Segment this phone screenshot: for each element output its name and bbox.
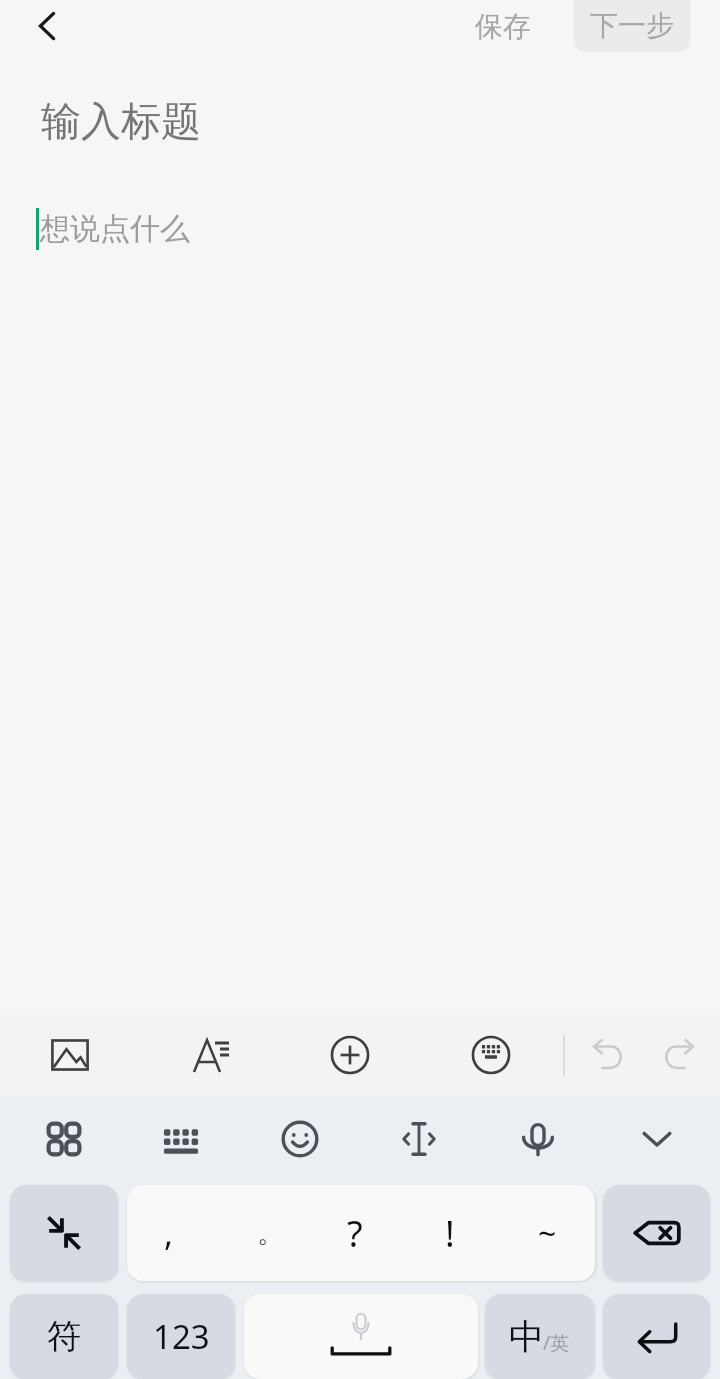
button[interactable]: Back <box>19 0 75 54</box>
staticText: , <box>164 1210 174 1256</box>
button[interactable]: 输入标题 <box>0 70 720 160</box>
button[interactable]: 符 <box>10 1294 118 1379</box>
button[interactable]: Redo <box>646 1023 710 1087</box>
button[interactable]: Keyboard <box>459 1023 523 1087</box>
button[interactable]: Keyboard layout <box>149 1107 213 1171</box>
staticText: 想说点什么 <box>40 210 190 248</box>
staticText: /英 <box>543 1330 570 1356</box>
button[interactable]: 下一步 <box>574 0 690 52</box>
button[interactable]: Collapse keyboard <box>10 1185 118 1281</box>
staticText: 。 <box>257 1217 283 1250</box>
staticText: 符 <box>47 1315 81 1358</box>
button[interactable]: Voice input <box>506 1107 570 1171</box>
staticText: 输入标题 <box>41 96 201 146</box>
staticText: ! <box>445 1209 455 1258</box>
button[interactable]: Space <box>244 1294 478 1379</box>
button[interactable]: Move cursor <box>387 1107 451 1171</box>
button[interactable]: Insert image <box>38 1023 102 1087</box>
button[interactable]: Apps <box>32 1107 96 1171</box>
button[interactable]: 123 <box>127 1294 235 1379</box>
staticText: ~ <box>538 1211 557 1255</box>
button[interactable]: Text format <box>177 1023 241 1087</box>
button[interactable]: Hide keyboard <box>625 1107 689 1171</box>
staticText: ? <box>347 1209 363 1258</box>
staticText: 123 <box>153 1314 210 1359</box>
staticText: 中 <box>509 1315 544 1359</box>
button[interactable]: Add <box>318 1023 382 1087</box>
staticText: 下一步 <box>590 8 674 43</box>
button[interactable]: 中 <box>485 1294 595 1379</box>
button[interactable]: 保存 <box>458 0 548 56</box>
button[interactable]: Undo <box>577 1023 641 1087</box>
button[interactable]: Emoji <box>268 1107 332 1171</box>
button[interactable]: Enter <box>603 1294 710 1379</box>
button[interactable]: 想说点什么 <box>0 180 720 990</box>
button[interactable]: Backspace <box>603 1185 710 1281</box>
staticText: 保存 <box>475 9 531 44</box>
button[interactable]: , <box>127 1185 595 1281</box>
